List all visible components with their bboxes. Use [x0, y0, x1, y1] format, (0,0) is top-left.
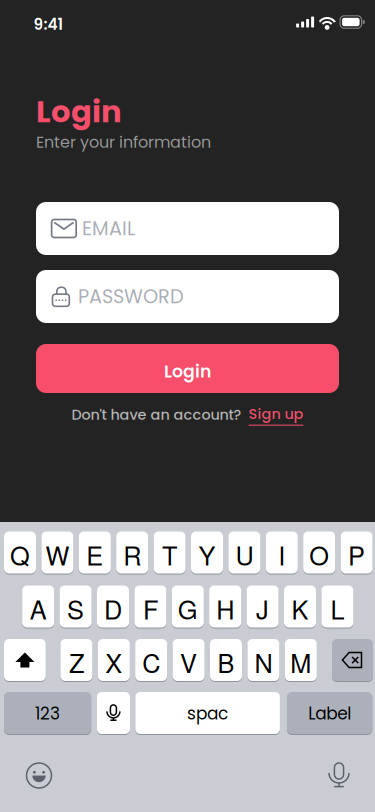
button[interactable]: spac [135, 692, 280, 734]
staticText: F [143, 590, 158, 627]
staticText: Login [36, 90, 122, 133]
button[interactable]: R [116, 531, 148, 573]
staticText: EMAIL [82, 215, 135, 242]
staticText: K [291, 590, 308, 627]
staticText: A [30, 590, 47, 627]
button[interactable]: F [134, 585, 166, 627]
staticText: Y [198, 536, 215, 573]
button[interactable]: A [22, 585, 54, 627]
button[interactable]: W [41, 531, 73, 573]
staticText: V [180, 644, 197, 680]
staticText: B [217, 644, 234, 680]
button[interactable]: E [79, 531, 111, 573]
staticText: G [178, 590, 198, 627]
button[interactable] [97, 692, 130, 734]
button[interactable]: Z [60, 639, 92, 681]
staticText: N [254, 644, 272, 680]
button[interactable]: B [210, 639, 242, 681]
button[interactable]: L [321, 585, 353, 627]
button[interactable]: Y [191, 531, 223, 573]
button[interactable]: O [303, 531, 335, 573]
staticText: W [45, 536, 69, 573]
staticText: Q [10, 536, 30, 573]
staticText: Sign up [248, 404, 303, 424]
staticText: Don't have an account? [71, 405, 241, 425]
staticText: Enter your information [36, 131, 211, 153]
button[interactable] [332, 639, 373, 681]
button[interactable]: N [247, 639, 279, 681]
staticText: Login [164, 359, 211, 384]
button[interactable]: X [98, 639, 130, 681]
button[interactable]: G [172, 585, 204, 627]
staticText: S [67, 590, 84, 627]
button[interactable]: U [228, 531, 260, 573]
staticText: E [86, 536, 103, 573]
button[interactable]: Sign up [248, 404, 303, 426]
staticText: R [123, 536, 141, 573]
staticText: 123 [35, 702, 60, 725]
staticText: M [290, 644, 311, 680]
staticText: 9:41 [33, 14, 63, 35]
button[interactable]: 123 [4, 692, 91, 734]
button[interactable]: Login [36, 344, 339, 393]
staticText: X [105, 644, 122, 680]
button[interactable]: Emoji [26, 762, 52, 788]
staticText: spac [187, 702, 228, 725]
staticText: H [216, 590, 234, 627]
button[interactable] [4, 639, 46, 681]
button[interactable]: I [266, 531, 298, 573]
button[interactable]: J [247, 585, 279, 627]
staticText: Z [69, 644, 84, 680]
button[interactable]: S [60, 585, 92, 627]
button[interactable]: C [135, 639, 167, 681]
staticText: J [256, 590, 269, 627]
button[interactable]: PASSWORD [36, 270, 339, 323]
staticText: I [278, 536, 285, 573]
button[interactable]: D [97, 585, 129, 627]
staticText: D [104, 590, 122, 627]
button[interactable]: P [341, 531, 373, 573]
staticText: O [309, 536, 329, 573]
button[interactable]: V [173, 639, 205, 681]
button[interactable]: M [285, 639, 317, 681]
staticText: C [142, 644, 160, 680]
button[interactable]: EMAIL [36, 202, 339, 255]
button[interactable]: Dictate [329, 763, 349, 788]
staticText: T [162, 536, 177, 573]
staticText: PASSWORD [78, 283, 184, 310]
button[interactable]: H [209, 585, 241, 627]
button[interactable]: K [284, 585, 316, 627]
staticText: L [330, 590, 344, 627]
staticText: U [235, 536, 253, 573]
button[interactable]: Label [287, 692, 372, 734]
staticText: P [348, 536, 365, 573]
button[interactable]: Q [4, 531, 36, 573]
staticText: Label [308, 702, 351, 725]
button[interactable]: T [154, 531, 186, 573]
